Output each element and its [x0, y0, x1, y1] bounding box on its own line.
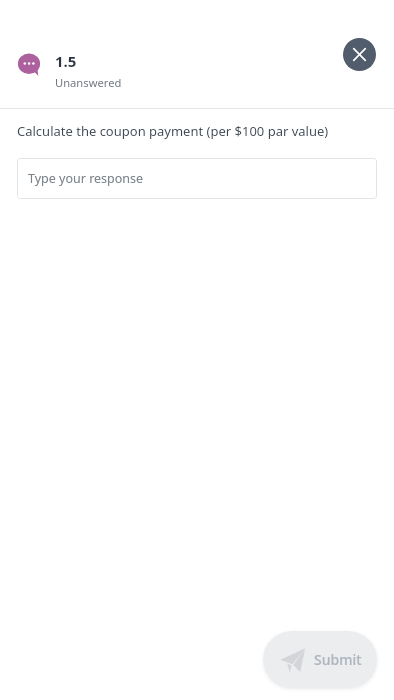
- button[interactable]: 1.5: [0, 44, 300, 92]
- button[interactable]: Close: [343, 38, 376, 71]
- button[interactable]: Type your response: [17, 158, 377, 199]
- staticText: Submit: [314, 650, 362, 669]
- button[interactable]: Submit: [263, 631, 377, 688]
- staticText: Calculate the coupon payment (per $100 p…: [17, 122, 329, 140]
- staticText: Type your response: [28, 170, 144, 187]
- staticText: Unanswered: [55, 75, 122, 90]
- staticText: 1.5: [55, 51, 77, 71]
